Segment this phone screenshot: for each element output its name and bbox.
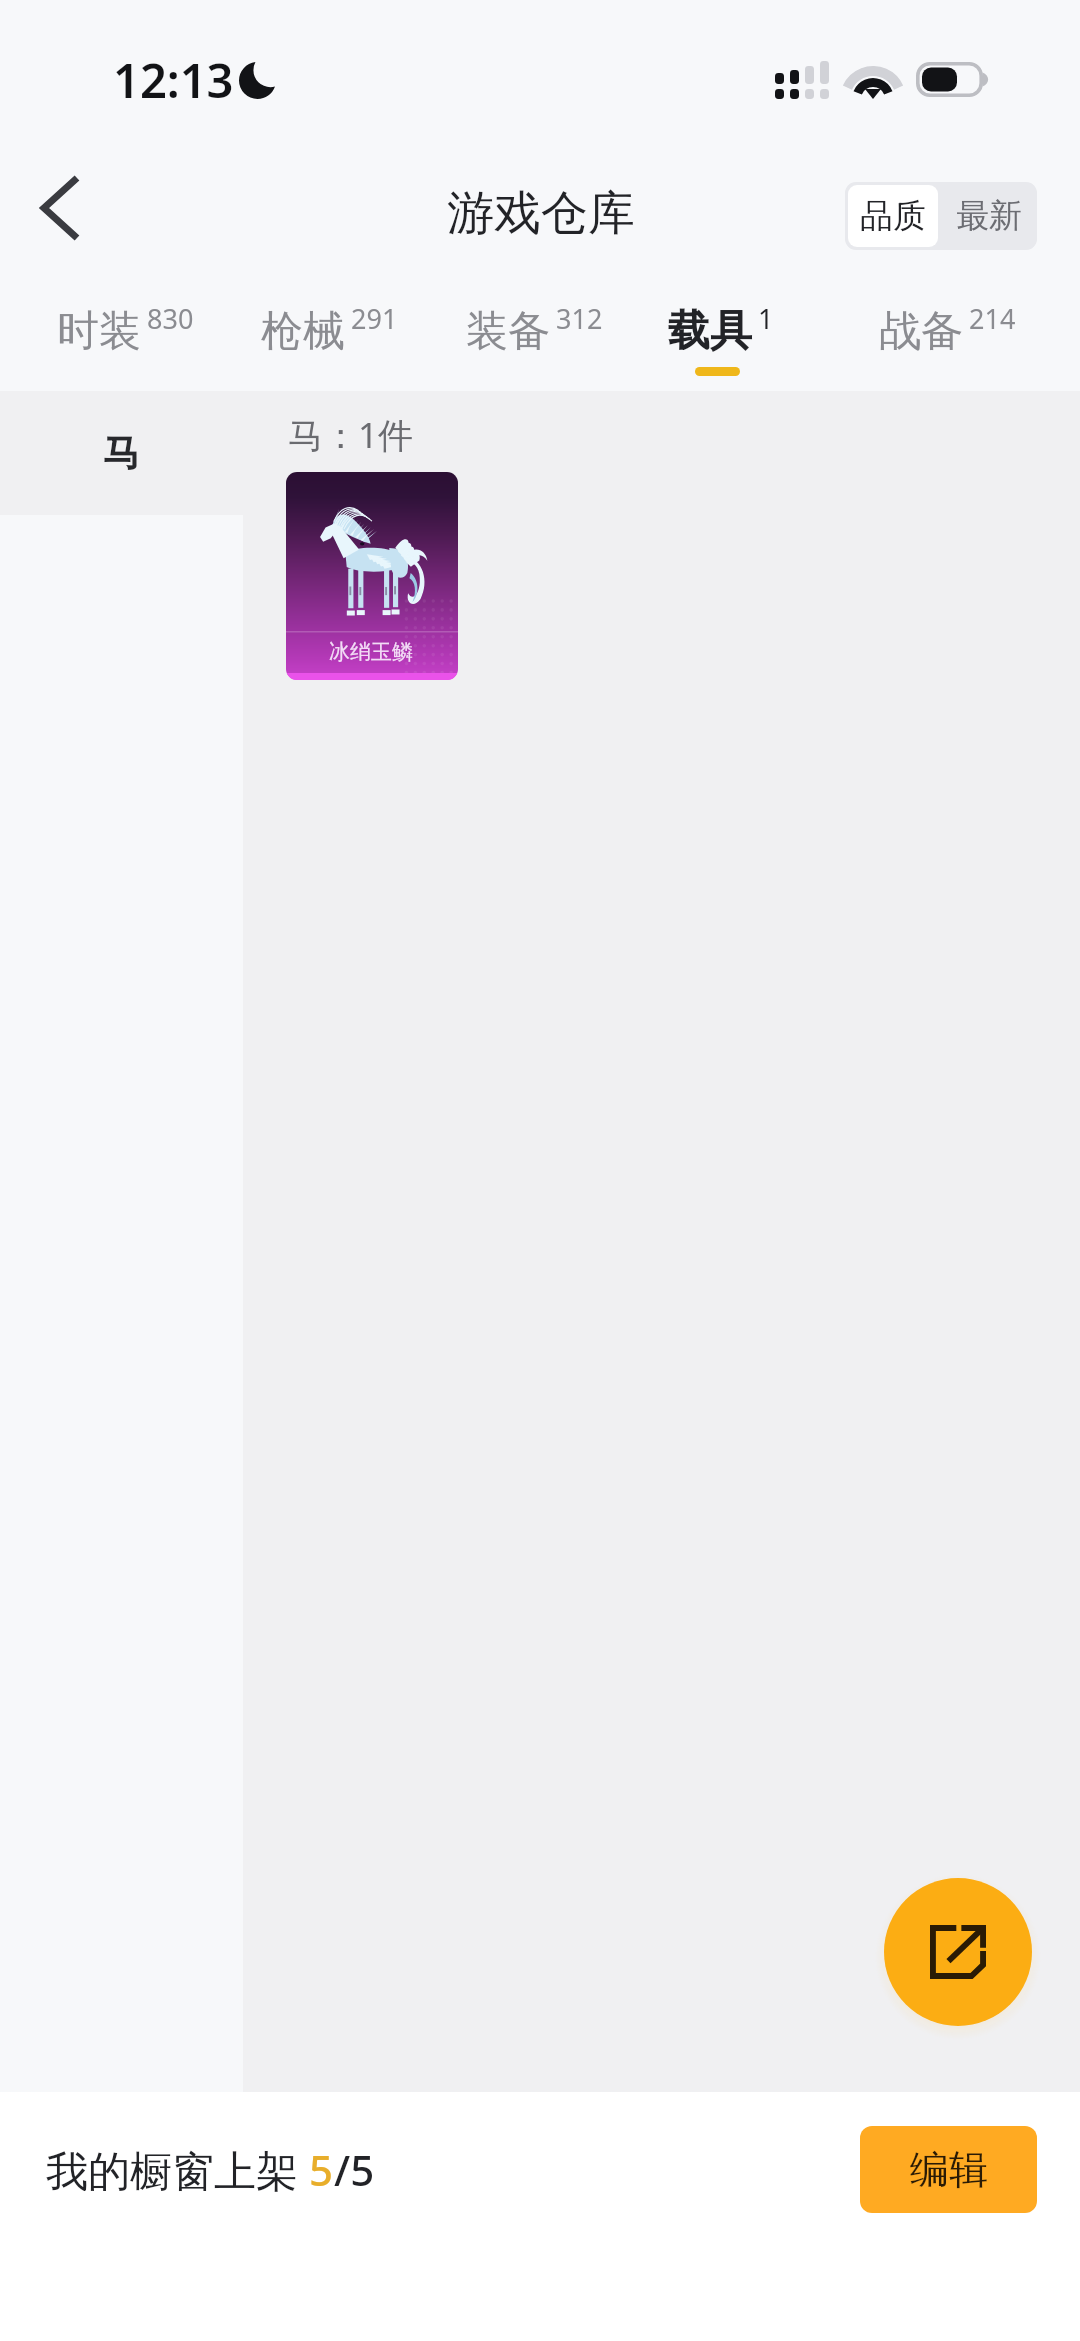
button[interactable]: 编辑 — [860, 2126, 1037, 2213]
staticText: 12:13 — [113, 48, 234, 112]
staticText: 830 — [147, 300, 194, 337]
staticText: 312 — [556, 300, 603, 337]
button[interactable]: 时装 — [39, 288, 217, 383]
staticText: 马：1件 — [288, 411, 414, 459]
button[interactable]: 最新 — [941, 182, 1037, 250]
staticText: 品质 — [860, 195, 926, 237]
staticText: 214 — [969, 300, 1016, 337]
button[interactable]: 冰绡玉鳞 — [286, 472, 458, 680]
button[interactable]: 马 — [0, 391, 243, 515]
staticText: 291 — [351, 300, 398, 337]
staticText: 载具 — [668, 305, 752, 358]
button[interactable]: 载具 — [650, 288, 794, 383]
staticText: 1 — [758, 300, 774, 337]
button[interactable]: Back — [4, 148, 116, 268]
button[interactable]: 枪械 — [243, 288, 421, 383]
staticText: 马 — [103, 430, 140, 477]
button[interactable]: 战备 — [861, 288, 1039, 383]
staticText: 编辑 — [910, 2145, 988, 2194]
staticText: 我的橱窗上架 — [46, 2141, 309, 2198]
button[interactable]: 装备 — [448, 288, 626, 383]
staticText: 枪械 — [261, 305, 345, 358]
button[interactable]: 品质 — [848, 185, 938, 247]
staticText: 游戏仓库 — [447, 184, 635, 243]
staticText: 5 — [309, 2141, 334, 2198]
staticText: /5 — [334, 2141, 375, 2198]
staticText: 时装 — [57, 305, 141, 358]
staticText: 战备 — [879, 305, 963, 358]
staticText: 冰绡玉鳞 — [329, 639, 413, 665]
staticText: 最新 — [956, 195, 1022, 237]
staticText: 装备 — [466, 305, 550, 358]
button[interactable]: Open in new window — [884, 1878, 1032, 2026]
